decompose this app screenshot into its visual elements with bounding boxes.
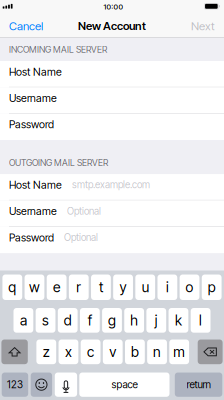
staticText: b [131, 343, 139, 360]
staticText: m [173, 343, 185, 360]
staticText: Optional [67, 205, 101, 217]
button[interactable]: g [102, 308, 122, 333]
button[interactable]: v [103, 339, 123, 364]
button[interactable]: Emoji [31, 372, 52, 397]
button[interactable]: return [175, 372, 222, 397]
staticText: v [109, 343, 116, 360]
button[interactable]: w [25, 274, 44, 300]
staticText: y [120, 279, 127, 296]
button[interactable]: i [157, 274, 177, 300]
button[interactable]: y [113, 274, 133, 300]
button[interactable]: Username [0, 87, 224, 114]
button[interactable]: b [125, 339, 145, 364]
button[interactable]: Username [0, 200, 224, 227]
button[interactable]: q [2, 274, 22, 300]
button[interactable]: Host Name [0, 61, 224, 87]
staticText: Host Name [9, 65, 62, 78]
staticText: Username [9, 205, 57, 218]
button[interactable]: p [202, 274, 222, 300]
staticText: OUTGOING MAIL SERVER [9, 157, 108, 168]
button[interactable]: o [180, 274, 199, 300]
button[interactable]: n [147, 339, 167, 364]
button[interactable]: m [169, 339, 189, 364]
staticText: space [111, 378, 137, 391]
staticText: n [153, 343, 161, 360]
button[interactable]: Shift [1, 339, 28, 364]
button[interactable]: d [58, 308, 78, 333]
button[interactable]: l [191, 308, 210, 333]
button[interactable]: j [146, 308, 166, 333]
staticText: i [166, 279, 169, 296]
button[interactable]: c [81, 339, 100, 364]
staticText: k [175, 312, 182, 329]
staticText: j [155, 312, 158, 329]
staticText: 10:00 [103, 2, 123, 11]
staticText: Next [191, 19, 215, 33]
staticText: Username [9, 92, 57, 105]
staticText: Password [9, 118, 54, 131]
staticText: q [8, 279, 16, 296]
button[interactable]: r [69, 274, 89, 300]
staticText: z [43, 343, 50, 360]
staticText: d [64, 312, 72, 329]
button[interactable]: a [13, 308, 33, 333]
staticText: a [20, 312, 27, 329]
staticText: s [42, 312, 49, 329]
staticText: w [29, 279, 40, 296]
staticText: New Account [78, 19, 146, 33]
staticText: u [142, 279, 149, 296]
button[interactable]: Cancel [0, 15, 50, 37]
staticText: c [87, 343, 94, 360]
staticText: INCOMING MAIL SERVER [9, 44, 107, 55]
button[interactable]: Next [183, 15, 224, 37]
staticText: p [208, 279, 216, 296]
staticText: h [130, 312, 138, 329]
staticText: 123 [7, 378, 23, 391]
staticText: Password [9, 231, 54, 244]
staticText: Host Name [9, 178, 62, 191]
button[interactable]: Password [0, 114, 224, 140]
staticText: e [53, 279, 60, 296]
staticText: Cancel [9, 19, 43, 33]
button[interactable]: u [135, 274, 155, 300]
staticText: o [185, 279, 193, 296]
button[interactable]: Dictation [55, 372, 77, 397]
staticText: t [99, 279, 103, 296]
button[interactable]: x [58, 339, 78, 364]
button[interactable]: Delete [198, 339, 223, 364]
button[interactable]: h [124, 308, 144, 333]
staticText: x [65, 343, 72, 360]
button[interactable]: Password [0, 227, 224, 253]
staticText: g [108, 312, 116, 329]
staticText: smtp.example.com [72, 179, 150, 191]
button[interactable]: space [79, 372, 169, 397]
button[interactable]: s [36, 308, 55, 333]
staticText: r [76, 279, 81, 296]
button[interactable]: Numbers [2, 372, 28, 397]
staticText: f [88, 312, 92, 329]
button[interactable]: t [91, 274, 111, 300]
button[interactable]: z [36, 339, 56, 364]
staticText: return [187, 378, 211, 391]
staticText: l [199, 312, 202, 329]
button[interactable]: k [169, 308, 188, 333]
button[interactable]: f [80, 308, 100, 333]
button[interactable]: Host Name [0, 174, 224, 200]
staticText: Optional [64, 232, 98, 243]
button[interactable]: e [47, 274, 66, 300]
